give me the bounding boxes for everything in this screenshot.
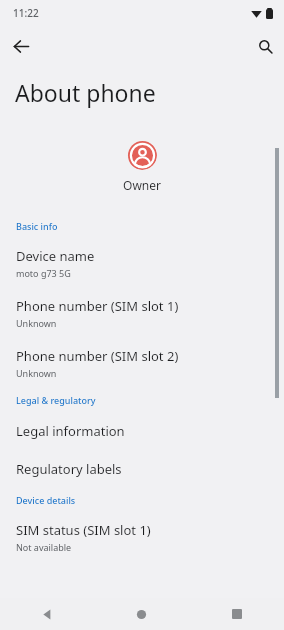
button[interactable]: SIM status (SIM slot 1) xyxy=(0,512,284,562)
staticText: Phone number (SIM slot 1) xyxy=(16,297,179,315)
button[interactable]: Home xyxy=(94,598,189,630)
staticText: 11:22 xyxy=(13,6,39,20)
staticText: Device details xyxy=(16,494,76,506)
button[interactable]: Phone number (SIM slot 1) xyxy=(0,288,284,338)
button[interactable]: Account avatar xyxy=(127,140,157,170)
staticText: About phone xyxy=(15,77,156,108)
button[interactable]: Device name xyxy=(0,238,284,288)
button[interactable]: Back xyxy=(6,31,36,61)
staticText: Unknown xyxy=(16,367,57,379)
button[interactable]: Back xyxy=(0,598,94,630)
button[interactable]: Phone number (SIM slot 2) xyxy=(0,338,284,388)
staticText: Unknown xyxy=(16,317,57,329)
button[interactable]: Recent apps xyxy=(189,598,284,630)
staticText: SIM status (SIM slot 1) xyxy=(16,521,151,539)
staticText: Owner xyxy=(123,177,161,193)
button[interactable]: Search xyxy=(250,31,280,61)
staticText: Legal information xyxy=(16,422,125,440)
staticText: Phone number (SIM slot 2) xyxy=(16,347,179,365)
staticText: moto g73 5G xyxy=(16,267,71,279)
staticText: Basic info xyxy=(16,220,58,232)
staticText: Regulatory labels xyxy=(16,460,122,478)
staticText: Legal & regulatory xyxy=(16,394,96,406)
button[interactable]: Regulatory labels xyxy=(0,450,284,488)
staticText: Device name xyxy=(16,247,95,265)
staticText: Not available xyxy=(16,541,72,553)
button[interactable]: Legal information xyxy=(0,412,284,450)
